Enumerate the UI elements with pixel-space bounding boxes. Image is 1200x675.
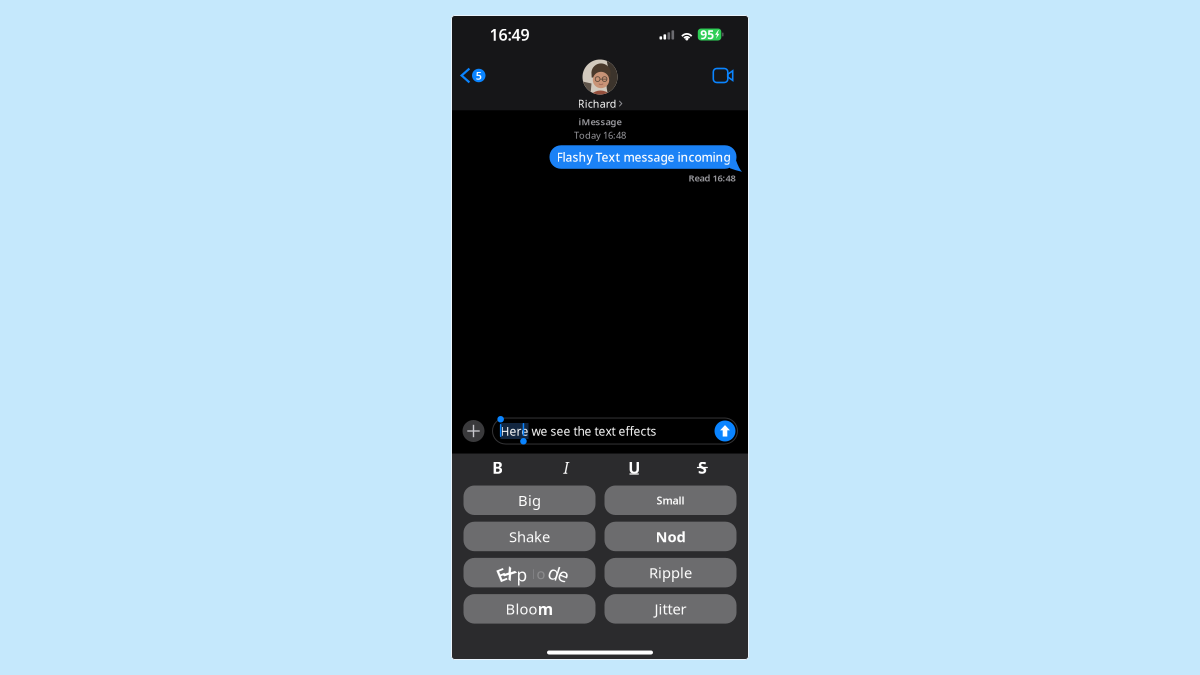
button[interactable]: Big <box>463 485 595 515</box>
staticText: p <box>516 563 527 586</box>
button[interactable]: I <box>532 453 600 481</box>
button[interactable]: Bloom <box>463 594 595 624</box>
staticText: m <box>537 598 553 619</box>
staticText: Ripple <box>649 563 692 582</box>
staticText: x <box>505 558 516 585</box>
staticText: Jitter <box>654 599 686 619</box>
staticText: Richard <box>578 96 617 111</box>
staticText: I <box>563 457 568 478</box>
button[interactable]: Send <box>714 420 735 441</box>
staticText: Here <box>500 423 528 439</box>
staticText: 16:49 <box>489 24 529 45</box>
button[interactable]: Ripple <box>604 558 736 587</box>
staticText: Flashy Text message incoming <box>556 149 730 165</box>
staticText: Big <box>518 490 541 510</box>
staticText: we see the text effects <box>528 423 656 439</box>
button[interactable]: Explode <box>463 558 595 587</box>
staticText: Bloo <box>505 599 537 619</box>
button[interactable]: FaceTime video call <box>703 56 748 94</box>
staticText: U <box>628 457 640 478</box>
staticText: Shake <box>509 527 550 546</box>
staticText: Small <box>656 493 684 507</box>
button[interactable]: Nod <box>604 522 736 551</box>
button[interactable]: Richard — contact details <box>570 53 630 111</box>
staticText: Read 16:48 <box>688 172 735 184</box>
button[interactable]: S <box>668 453 736 481</box>
button[interactable]: Back <box>451 56 493 94</box>
button[interactable]: B <box>463 453 532 481</box>
staticText: Today 16:48 <box>574 129 626 141</box>
staticText: e <box>558 562 569 587</box>
button[interactable]: U <box>600 453 668 481</box>
button[interactable]: Add attachment <box>462 420 484 442</box>
button[interactable]: Message field: Here we see the text effe… <box>492 418 737 444</box>
staticText: l <box>531 567 534 583</box>
staticText: S <box>698 457 707 478</box>
button[interactable]: Shake <box>463 522 595 551</box>
staticText: d <box>548 560 559 585</box>
button[interactable]: Small <box>604 485 736 515</box>
staticText: 5 <box>476 68 482 83</box>
staticText: E <box>496 563 506 586</box>
staticText: o <box>536 564 545 583</box>
staticText: 95 <box>700 26 714 42</box>
staticText: iMessage <box>578 115 621 128</box>
staticText: B <box>492 457 503 478</box>
button[interactable]: Jitter <box>604 594 736 624</box>
staticText: Nod <box>655 527 685 546</box>
